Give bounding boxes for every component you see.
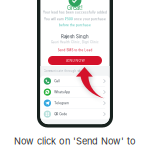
staticText: You will earn [44, 17, 64, 21]
staticText: Gauri Health Clinic, Digri Clinic [51, 41, 99, 44]
staticText: Call [54, 79, 60, 83]
staticText: QR Code [54, 112, 67, 116]
staticText: Your lead has been successfully added [43, 11, 107, 14]
button[interactable]: WhatsApp [40, 87, 110, 97]
staticText: Communicate through what... [44, 69, 88, 73]
button[interactable]: Call [40, 76, 110, 86]
staticText: Now click on 'Send Now' to [14, 135, 136, 147]
staticText: WhatsApp [54, 90, 70, 94]
staticText: SEND NOW [65, 58, 84, 62]
staticText: before the purchase [59, 23, 91, 27]
staticText: Rajesh Singh [61, 34, 89, 39]
button[interactable]: QR Code [40, 109, 110, 119]
staticText: once your purchase [74, 17, 106, 21]
staticText: ₹500 [65, 17, 73, 21]
button[interactable]: Telegram [40, 98, 110, 108]
staticText: Send SMS to the Lead [57, 48, 92, 52]
staticText: Telegram [54, 101, 69, 105]
button[interactable]: SEND NOW [48, 56, 102, 65]
staticText: Great! [67, 4, 83, 11]
